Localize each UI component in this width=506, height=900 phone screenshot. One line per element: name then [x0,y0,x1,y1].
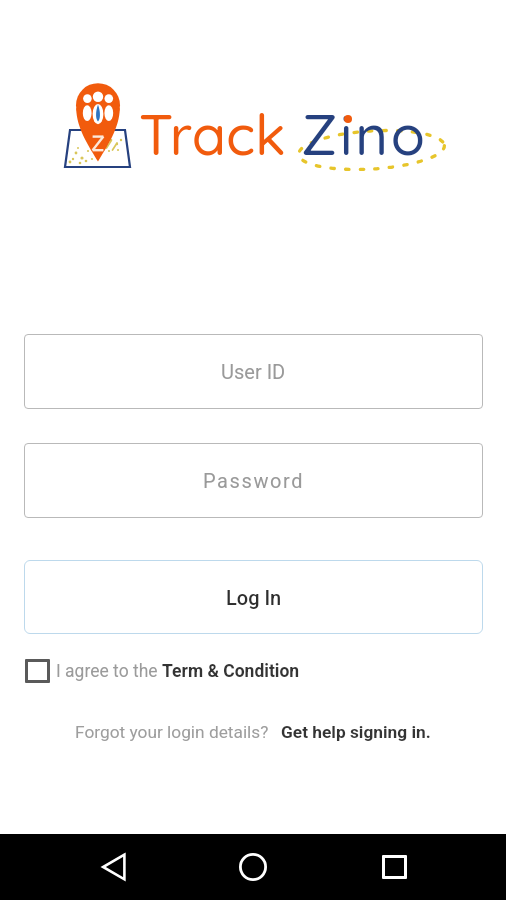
button[interactable]: Log In [24,560,483,634]
button[interactable]: I agree to the [25,659,300,683]
button[interactable]: Home [229,843,277,891]
button[interactable]: Password [24,443,483,518]
staticText: Forgot your login details? [75,722,269,742]
button[interactable]: Back [90,843,138,891]
staticText: Track [139,99,286,169]
staticText: Log In [226,586,282,609]
staticText: Zino [301,99,428,169]
button[interactable]: User ID [24,334,483,409]
button[interactable]: Get help signing in. [281,722,431,742]
button[interactable]: Recents [370,843,418,891]
staticText: User ID [221,360,286,383]
staticText: Password [203,469,305,492]
staticText: I agree to the [56,661,162,682]
staticText: Term & Condition [162,661,300,682]
